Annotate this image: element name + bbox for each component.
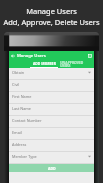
staticText: UNAPPROVED USERS [60, 60, 94, 68]
staticText: Manage Users [0, 6, 103, 16]
staticText: Email [12, 130, 22, 135]
staticText: ADD MEMBER [33, 61, 56, 66]
button[interactable]: Member Type [9, 152, 94, 163]
button[interactable]: Obtain [9, 68, 94, 79]
button[interactable]: Email [9, 128, 94, 139]
staticText: ADD [48, 166, 56, 171]
staticText: First Name [12, 94, 32, 99]
button[interactable]: First Name [9, 92, 94, 103]
button[interactable]: ADD [9, 164, 94, 172]
staticText: Civil [12, 82, 20, 87]
button[interactable]: Address [9, 140, 94, 151]
staticText: Address [12, 142, 27, 147]
staticText: Contact Number [12, 118, 42, 123]
staticText: Member Type [12, 154, 37, 159]
staticText: Last Name [12, 106, 32, 111]
button[interactable]: Civil [9, 80, 94, 91]
staticText: Manage Users [17, 53, 46, 59]
staticText: Add, Approve, Delete Users [0, 17, 103, 27]
button[interactable]: Options [85, 51, 94, 60]
button[interactable]: Last Name [9, 104, 94, 115]
button[interactable]: UNAPPROVED USERS [60, 60, 94, 68]
staticText: Obtain [12, 70, 25, 75]
button[interactable]: ADD MEMBER [28, 60, 60, 68]
button[interactable]: Back [9, 51, 17, 60]
button[interactable]: Contact Number [9, 116, 94, 127]
